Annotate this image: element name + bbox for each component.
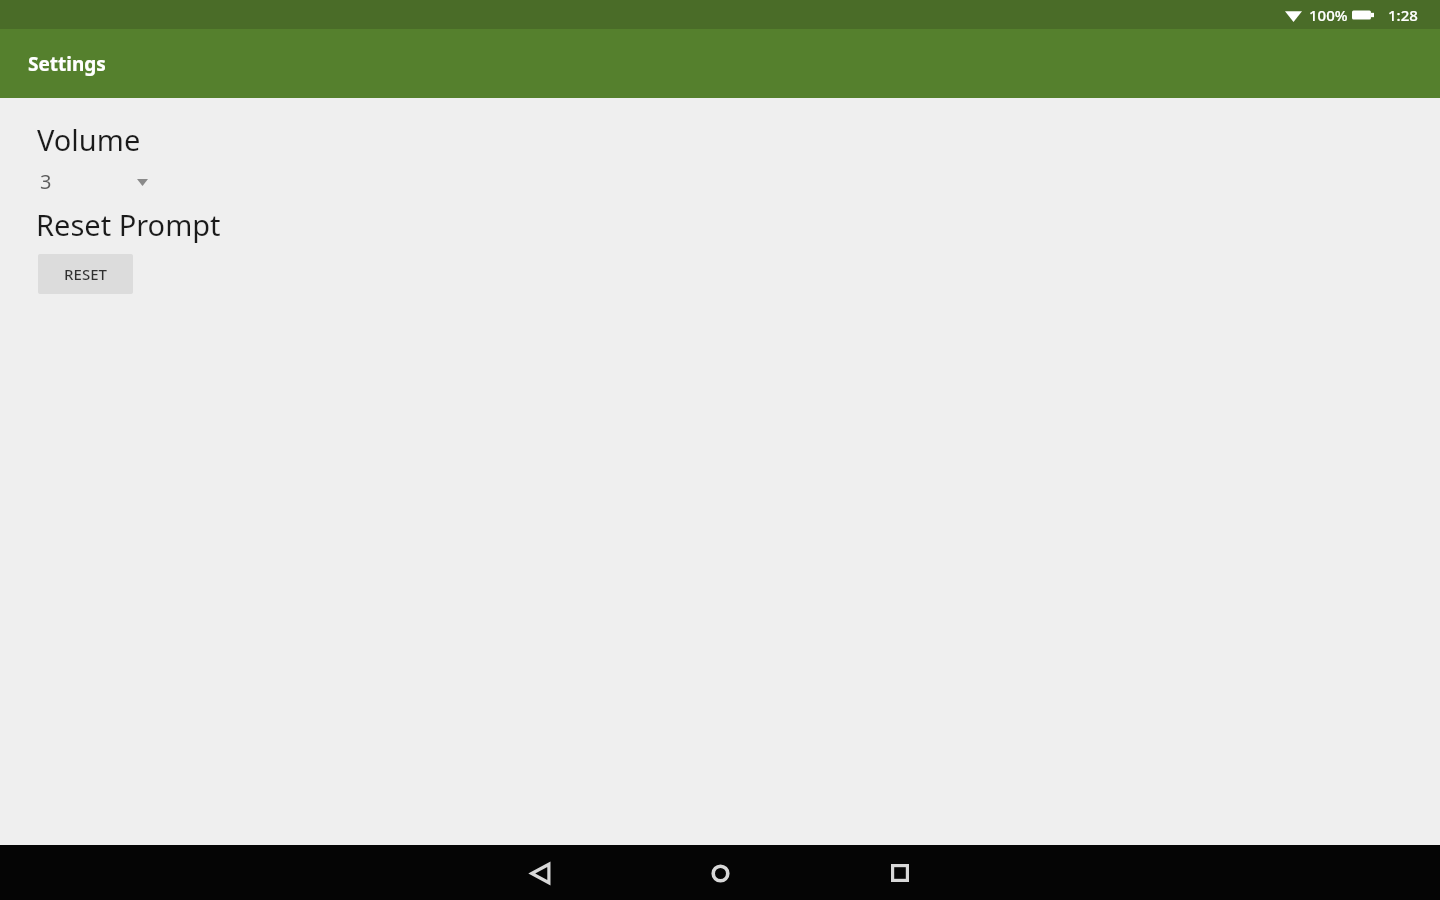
staticText: RESET [64,264,107,284]
button[interactable]: Recent apps [876,849,924,897]
staticText: Settings [28,51,106,77]
staticText: 100% [1309,5,1348,25]
staticText: 1:28 [1388,5,1418,25]
button[interactable]: Back [516,849,564,897]
staticText: Volume [37,120,141,159]
button[interactable]: Volume level selector [40,165,150,197]
staticText: Reset Prompt [36,205,221,244]
button[interactable]: Home [696,849,744,897]
staticText: 3 [40,168,52,195]
button[interactable]: RESET [38,254,133,294]
